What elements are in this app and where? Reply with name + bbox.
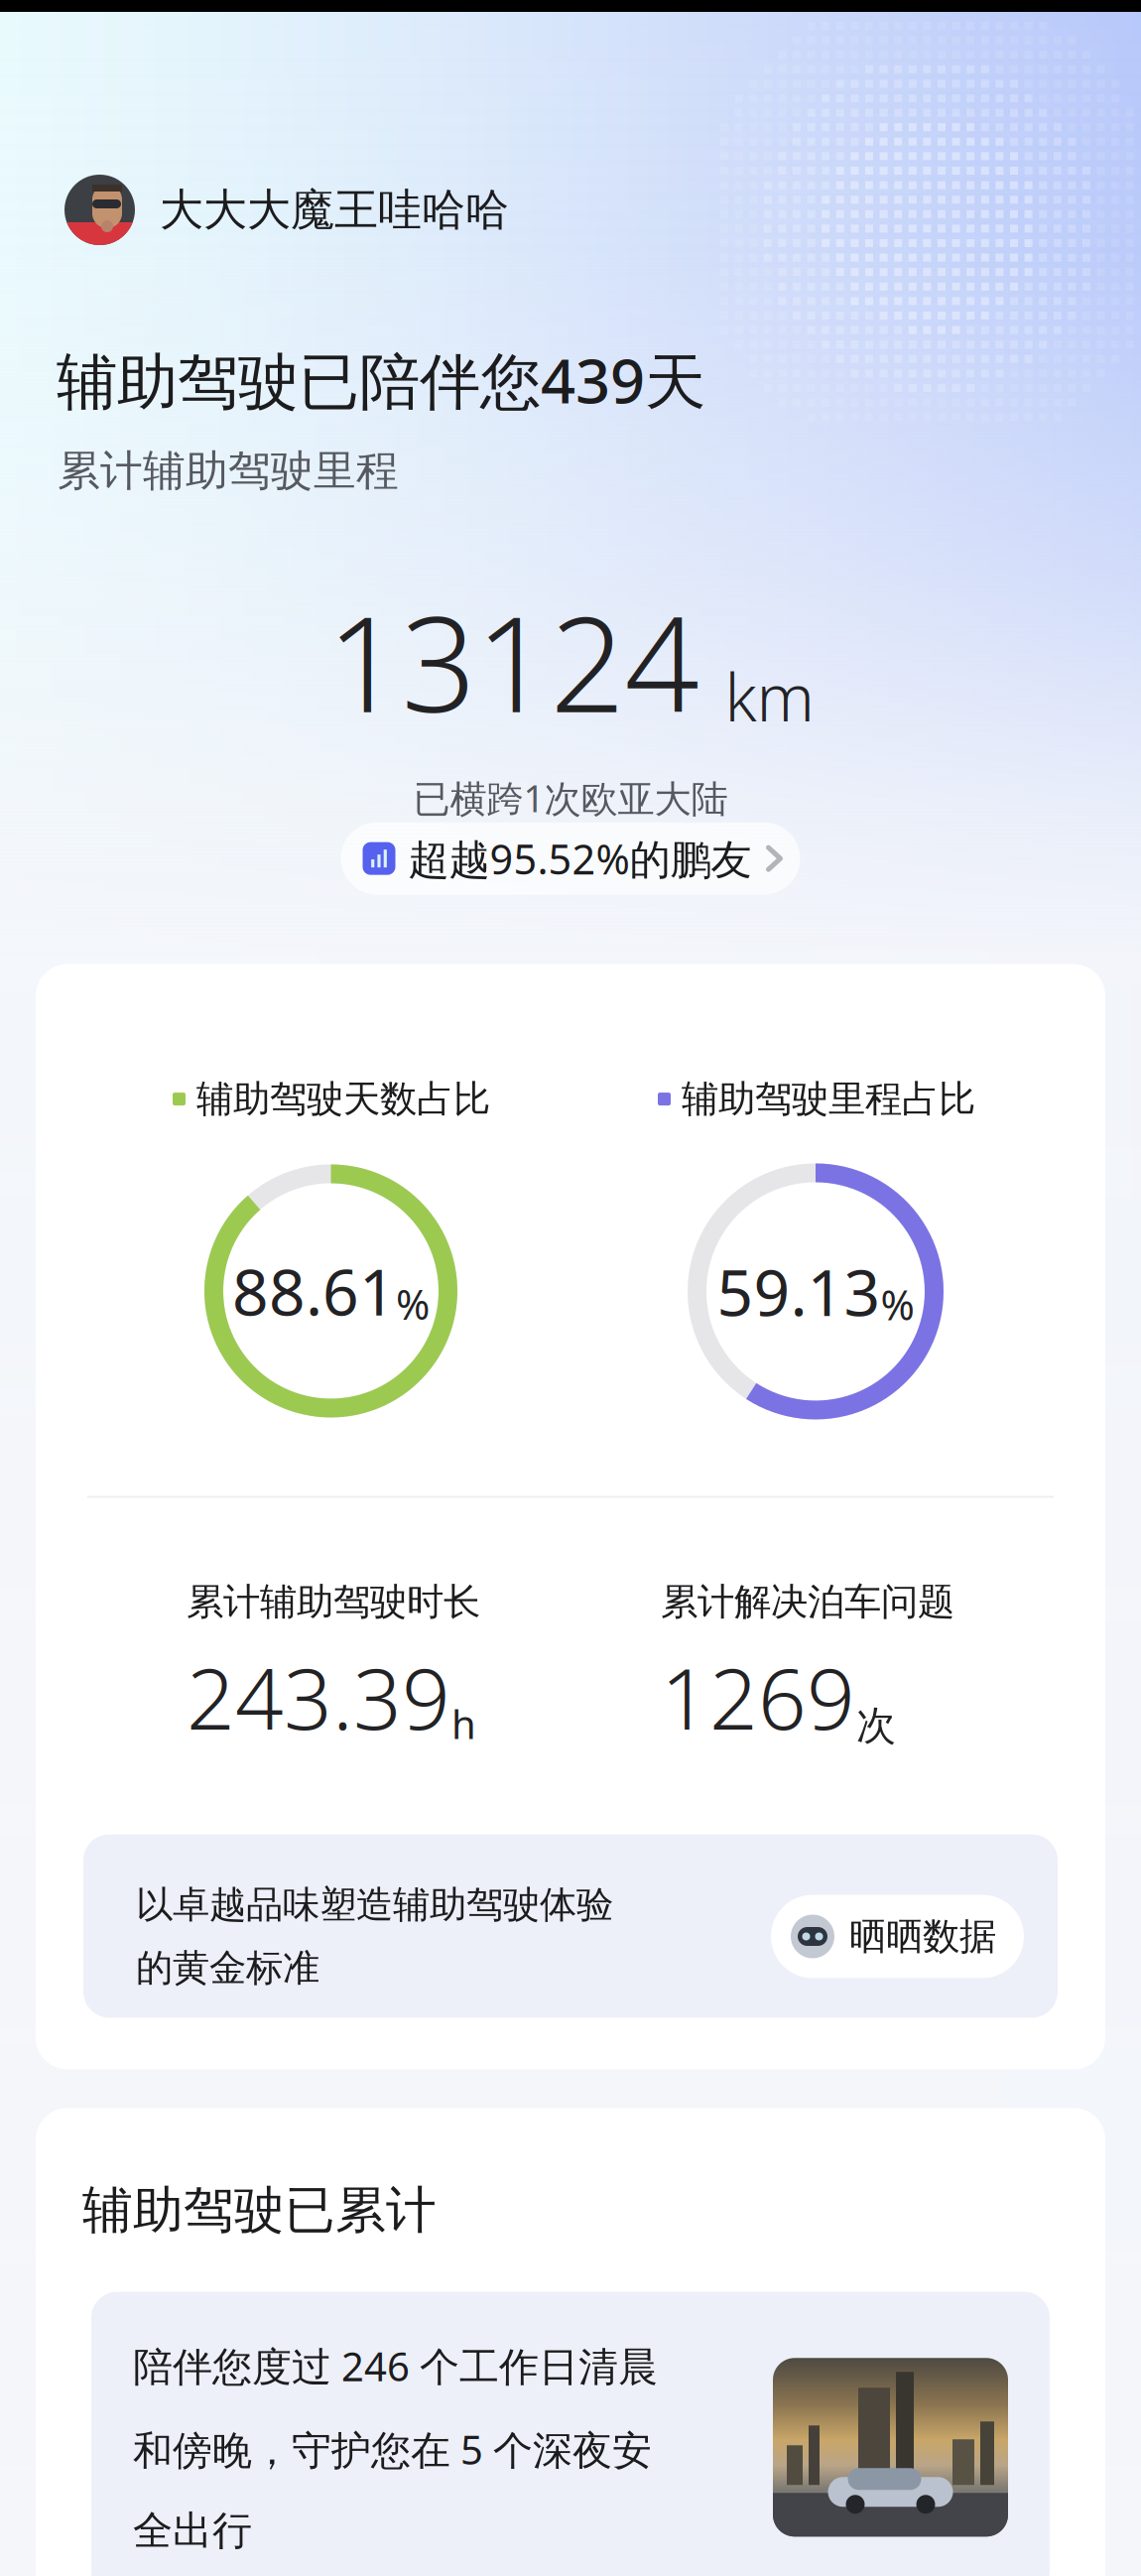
staticText: 晒晒数据	[849, 1914, 996, 1959]
staticText: %	[881, 1277, 914, 1332]
staticText: 辅助驾驶已陪伴您439天	[57, 339, 705, 420]
staticText: 88.61	[232, 1249, 396, 1333]
staticText: 超越95.52%的鹏友	[408, 831, 752, 886]
button[interactable]: 晒晒数据	[771, 1895, 1024, 1978]
staticText: 累计辅助驾驶里程	[58, 445, 399, 497]
staticText: 已横跨1次欧亚大陆	[413, 773, 728, 822]
button[interactable]: 超越95.52%的鹏友	[341, 822, 800, 895]
staticText: h	[451, 1697, 476, 1750]
staticText: 13124	[327, 574, 699, 748]
button[interactable]: 大大大魔王哇哈哈	[0, 175, 1141, 245]
staticText: 辅助驾驶天数占比	[196, 1076, 490, 1122]
staticText: 以卓越品味塑造辅助驾驶体验的黄金标准	[136, 1882, 613, 1991]
staticText: 大大大魔王哇哈哈	[160, 183, 509, 237]
staticText: 累计解决泊车问题	[661, 1579, 954, 1625]
staticText: 243.39	[187, 1641, 450, 1753]
staticText: 1269	[661, 1641, 855, 1753]
staticText: %	[396, 1277, 430, 1331]
staticText: 59.13	[717, 1249, 881, 1334]
staticText: km	[725, 653, 814, 739]
staticText: 累计辅助驾驶时长	[187, 1579, 480, 1625]
staticText: 辅助驾驶已累计	[82, 2179, 437, 2241]
staticText: 次	[856, 1701, 896, 1750]
staticText: 辅助驾驶里程占比	[682, 1076, 975, 1122]
staticText: 陪伴您度过 246 个工作日清晨和傍晚，守护您在 5 个深夜安全出行	[133, 2339, 658, 2555]
